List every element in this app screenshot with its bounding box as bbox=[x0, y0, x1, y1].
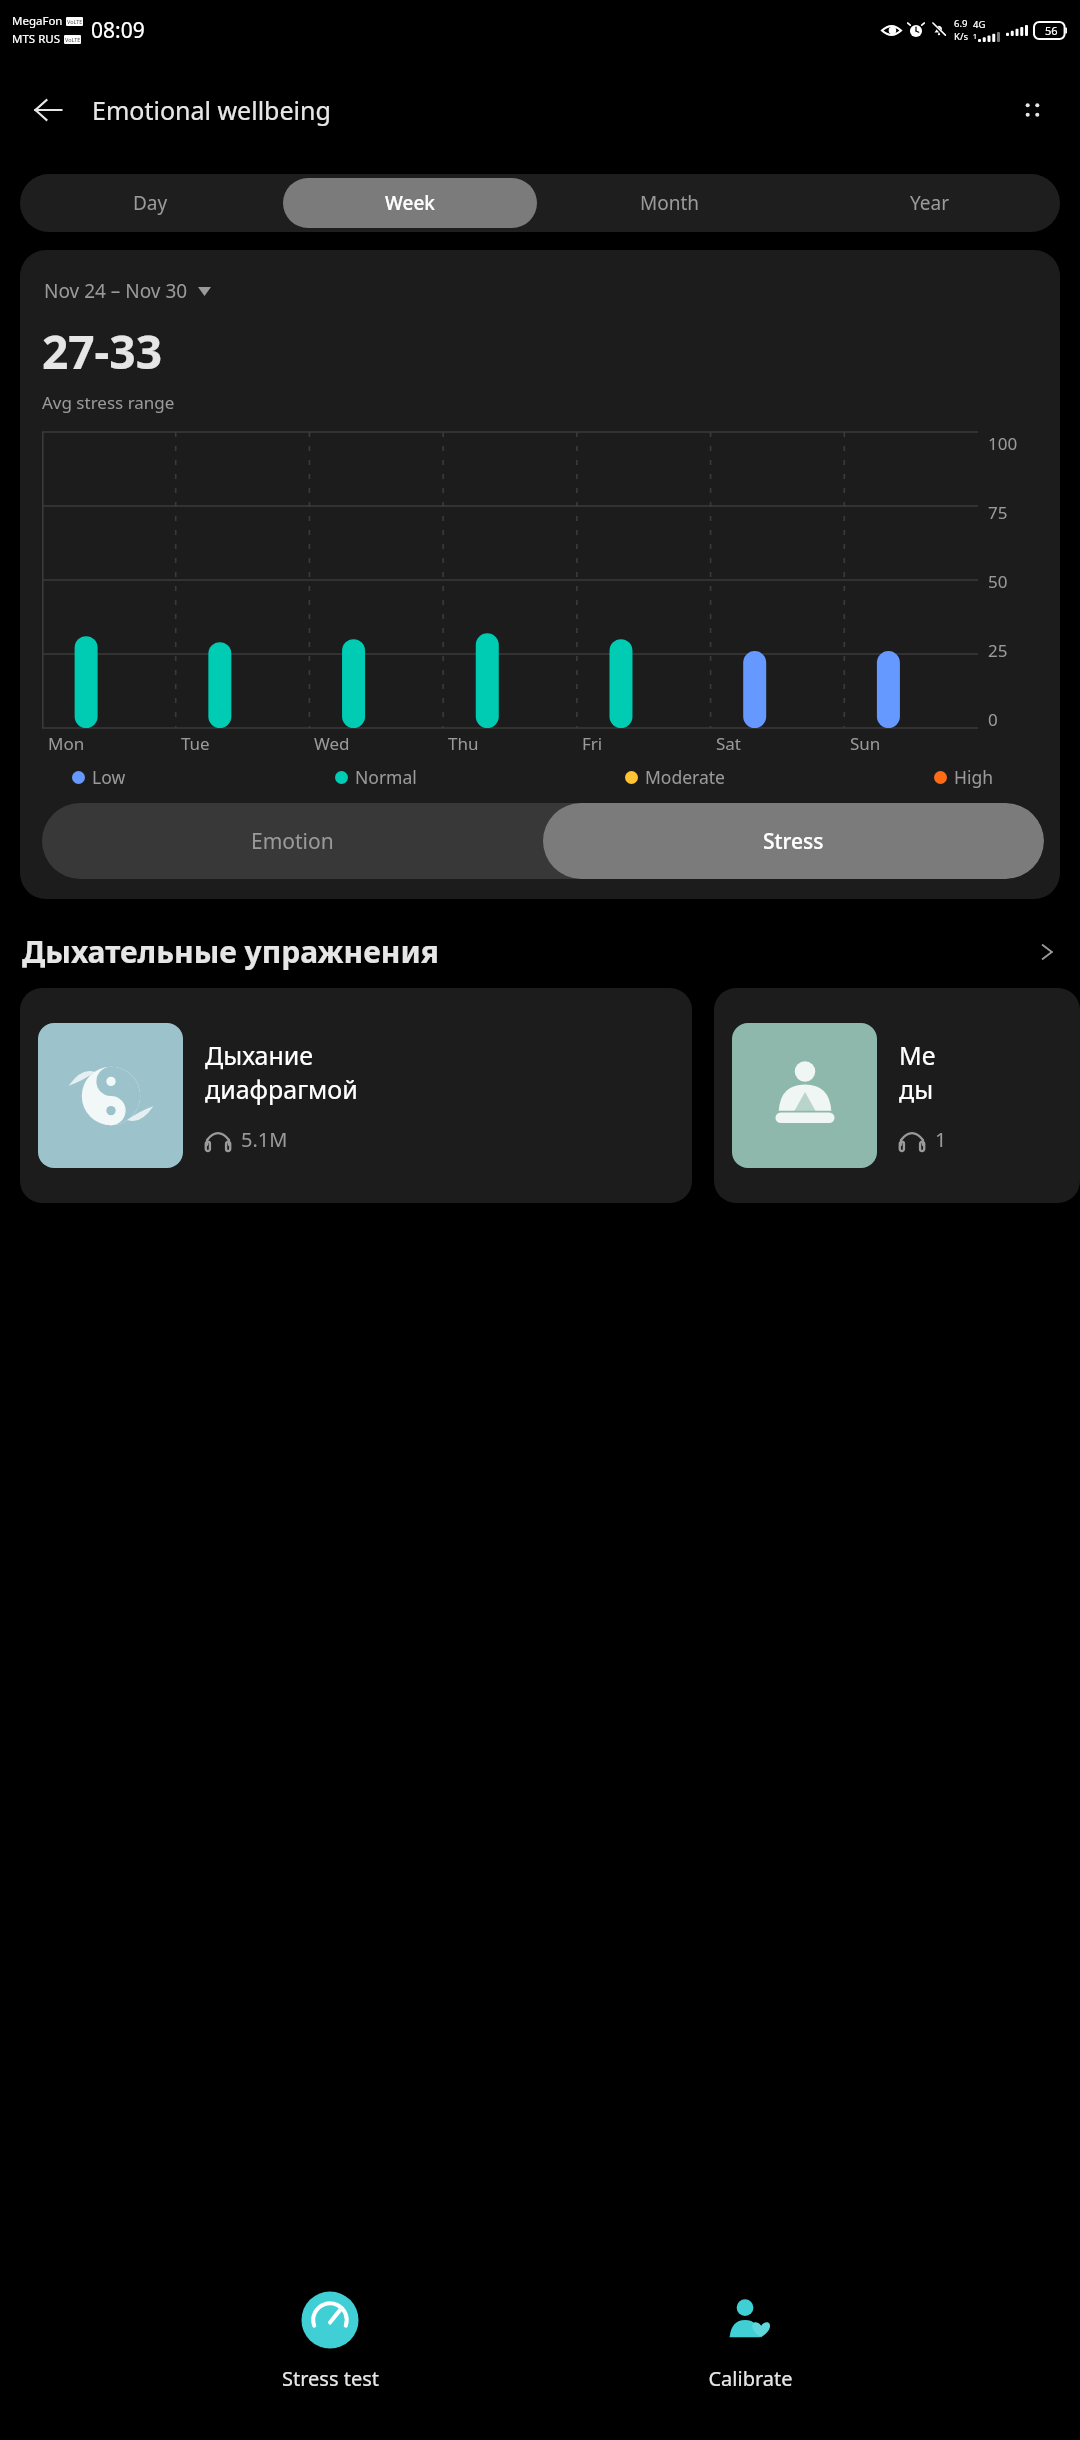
staticText: 25 bbox=[988, 639, 1008, 659]
staticText: MegaFon bbox=[12, 13, 63, 29]
staticText: Moderate bbox=[645, 765, 725, 789]
staticText: 1 bbox=[973, 32, 978, 42]
staticText: VoLTE bbox=[67, 18, 83, 25]
button[interactable]: Ме bbox=[714, 988, 1080, 1203]
staticText: Sun bbox=[850, 732, 881, 755]
button[interactable]: More options bbox=[1004, 82, 1060, 138]
button[interactable]: Дыхание bbox=[20, 988, 692, 1203]
staticText: Дыхательные упражнения bbox=[22, 931, 439, 972]
staticText: Wed bbox=[314, 732, 350, 755]
staticText: MTS RUS bbox=[12, 31, 61, 47]
button[interactable]: Week bbox=[283, 178, 537, 228]
staticText: VoLTE bbox=[65, 36, 81, 43]
button[interactable]: Nov 24 – Nov 30 bbox=[42, 276, 213, 306]
staticText: Mon bbox=[48, 732, 85, 755]
button[interactable]: Emotion bbox=[42, 803, 543, 879]
button[interactable]: Back bbox=[20, 82, 76, 138]
staticText: Дыхание bbox=[205, 1038, 314, 1072]
staticText: Fri bbox=[582, 732, 603, 755]
staticText: Nov 24 – Nov 30 bbox=[44, 278, 188, 304]
staticText: 4G bbox=[973, 18, 986, 31]
staticText: Week bbox=[385, 190, 435, 216]
staticText: Month bbox=[640, 190, 700, 216]
button[interactable]: Stress bbox=[543, 803, 1044, 879]
staticText: Thu bbox=[448, 732, 479, 755]
staticText: Emotion bbox=[251, 827, 334, 856]
button[interactable]: Month bbox=[543, 178, 797, 228]
staticText: 100 bbox=[988, 432, 1018, 452]
staticText: 27-33 bbox=[42, 320, 162, 383]
button[interactable]: Calibrate bbox=[620, 2281, 880, 2400]
staticText: 75 bbox=[988, 501, 1008, 521]
staticText: Normal bbox=[355, 765, 417, 789]
staticText: Sat bbox=[716, 732, 742, 755]
staticText: 56 bbox=[1045, 23, 1058, 38]
button[interactable]: Year bbox=[803, 178, 1057, 228]
staticText: Stress test bbox=[282, 2365, 379, 2392]
button[interactable]: Day bbox=[23, 178, 277, 228]
staticText: Day bbox=[133, 190, 168, 216]
staticText: Tue bbox=[181, 732, 210, 755]
staticText: 6.9 bbox=[954, 17, 968, 30]
staticText: Emotional wellbeing bbox=[92, 93, 331, 127]
staticText: диафрагмой bbox=[205, 1072, 358, 1106]
staticText: Low bbox=[92, 765, 126, 789]
staticText: High bbox=[954, 765, 994, 789]
staticText: Ме bbox=[899, 1038, 936, 1072]
staticText: 08:09 bbox=[91, 16, 145, 45]
staticText: 1 bbox=[935, 1126, 947, 1153]
staticText: K/s bbox=[954, 30, 968, 43]
button[interactable]: Дыхательные упражнения bbox=[0, 927, 1080, 976]
staticText: Calibrate bbox=[708, 2365, 793, 2392]
staticText: Stress bbox=[763, 827, 824, 856]
staticText: Year bbox=[910, 190, 950, 216]
staticText: 50 bbox=[988, 570, 1008, 590]
button[interactable]: Stress test bbox=[200, 2281, 460, 2400]
staticText: 5.1M bbox=[241, 1126, 288, 1153]
staticText: Avg stress range bbox=[42, 391, 175, 414]
staticText: ды bbox=[899, 1072, 934, 1106]
staticText: 0 bbox=[988, 708, 998, 728]
